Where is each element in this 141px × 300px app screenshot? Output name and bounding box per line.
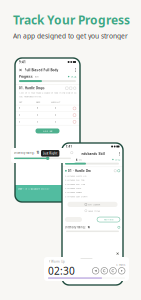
staticText: 07:52 xyxy=(115,158,120,161)
staticText: 1 of 3 xyxy=(23,187,29,190)
staticText: 1 xyxy=(54,120,56,124)
staticText: 1 xyxy=(54,113,56,117)
staticText: 3 Minutes Cool Down xyxy=(65,195,87,198)
staticText: Progress xyxy=(19,74,33,79)
staticText: 1 xyxy=(19,113,21,117)
button[interactable]: Forward xyxy=(110,267,116,274)
staticText: 01. Hurdle Drops xyxy=(19,86,44,90)
staticText: 01 · Hurdle Dro xyxy=(68,169,91,173)
staticText: STEP xyxy=(18,187,22,190)
staticText: Edit Logbook xyxy=(88,203,100,206)
staticText: 3 Minutes Pull Ups xyxy=(65,182,85,186)
staticText: 3 Minutes Squats xyxy=(65,191,82,194)
staticText: 1 xyxy=(54,107,56,110)
staticText: 1 xyxy=(37,113,39,117)
button[interactable] xyxy=(65,217,82,222)
staticText: 48 MINT xyxy=(30,187,39,190)
staticText: Intensity rating: xyxy=(65,225,86,229)
staticText: Just Right xyxy=(43,151,57,155)
staticText: WEIGHT xyxy=(51,100,60,103)
staticText: ndsbands Skill xyxy=(81,152,105,156)
staticText: 10 xyxy=(87,225,89,229)
staticText: 1 xyxy=(19,120,21,124)
staticText: 3 Minutes Full Top xyxy=(65,178,84,181)
staticText: A bit of it may make a couple of reps in… xyxy=(19,91,76,94)
staticText: SET xyxy=(19,100,22,103)
button[interactable]: Close xyxy=(62,252,123,257)
staticText: Cycle Dr xyxy=(41,187,50,190)
staticText: 3 Minutes Walk xyxy=(65,187,81,190)
staticText: Track Your Progress xyxy=(13,12,130,28)
staticText: 10 xyxy=(36,151,38,154)
button[interactable]: Add Notes xyxy=(97,217,120,222)
staticText: 40% xyxy=(78,158,82,161)
button[interactable]: Play xyxy=(118,267,125,274)
button[interactable]: Add Set xyxy=(35,128,59,133)
staticText: 3 Minutes Warm Up xyxy=(65,174,86,177)
staticText: Reset Timer xyxy=(88,209,100,212)
staticText: 9:41 xyxy=(65,145,72,148)
staticText: Intensity rating: xyxy=(14,151,35,154)
staticText: An app designed to get you stronger xyxy=(13,31,128,40)
staticText: Full Biased Full Body xyxy=(24,68,58,72)
button[interactable]: Previous xyxy=(92,267,99,274)
button[interactable]: Rewind xyxy=(101,267,108,274)
staticText: 1 xyxy=(37,120,39,124)
staticText: 1 xyxy=(37,107,39,110)
staticText: Add Notes xyxy=(103,218,113,221)
staticText: too, hyperdeactivities. xyxy=(19,95,42,98)
staticText: 9:41 xyxy=(19,60,26,64)
button[interactable]: Full Biased Full Body xyxy=(15,66,80,74)
staticText: 5 mins xyxy=(116,263,125,267)
staticText: 1 xyxy=(19,107,21,110)
staticText: 07:52 xyxy=(71,75,76,78)
staticText: Add Set xyxy=(42,129,52,133)
button[interactable]: Reset Timer xyxy=(85,207,100,214)
staticText: Warm Up xyxy=(51,260,65,264)
staticText: REPS xyxy=(36,100,40,103)
staticText: Progress xyxy=(65,157,77,161)
button[interactable]: Edit Logbook xyxy=(67,202,117,207)
button[interactable]: ndsbands Skill xyxy=(62,150,123,157)
staticText: 40% xyxy=(35,75,39,78)
staticText: 02:30 xyxy=(48,264,75,278)
